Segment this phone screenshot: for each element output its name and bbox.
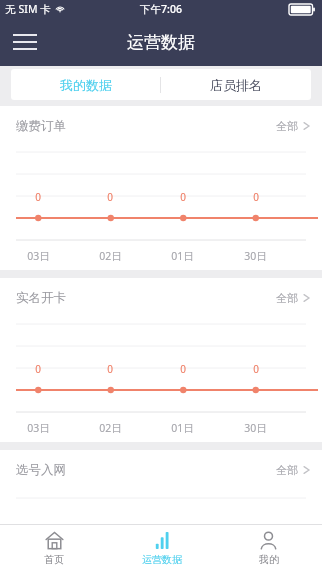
- staticText: 0: [107, 190, 113, 204]
- button[interactable]: 运营数据: [108, 525, 215, 572]
- button[interactable]: Menu: [8, 25, 42, 59]
- staticText: 02日: [99, 421, 122, 435]
- button[interactable]: 店员排名: [161, 69, 311, 100]
- staticText: 01日: [171, 421, 194, 435]
- staticText: 下午7:06: [140, 2, 182, 16]
- staticText: 03日: [27, 421, 50, 435]
- staticText: 缴费订单: [16, 118, 66, 134]
- staticText: 0: [253, 190, 259, 204]
- staticText: 0: [35, 190, 41, 204]
- staticText: 首页: [44, 553, 64, 566]
- staticText: 无 SIM 卡: [5, 2, 51, 16]
- staticText: 02日: [99, 249, 122, 263]
- staticText: 选号入网: [16, 462, 66, 478]
- staticText: 01日: [171, 249, 194, 263]
- staticText: 全部: [276, 291, 298, 305]
- staticText: 运营数据: [142, 553, 182, 566]
- staticText: 我的: [259, 553, 279, 566]
- staticText: 30日: [244, 249, 267, 263]
- staticText: 0: [107, 362, 113, 376]
- button[interactable]: 全部: [276, 106, 322, 146]
- button[interactable]: 全部: [276, 450, 322, 490]
- staticText: 全部: [276, 119, 298, 133]
- staticText: 运营数据: [127, 32, 195, 53]
- button[interactable]: 我的数据: [11, 69, 160, 100]
- staticText: 03日: [27, 249, 50, 263]
- staticText: 0: [253, 362, 259, 376]
- staticText: 我的数据: [60, 77, 112, 93]
- staticText: 30日: [244, 421, 267, 435]
- button[interactable]: 首页: [0, 525, 108, 572]
- staticText: 全部: [276, 463, 298, 477]
- staticText: 实名开卡: [16, 290, 66, 306]
- staticText: 0: [180, 362, 186, 376]
- staticText: 0: [180, 190, 186, 204]
- staticText: 0: [35, 362, 41, 376]
- button[interactable]: 我的: [215, 525, 322, 572]
- staticText: 店员排名: [210, 77, 262, 93]
- button[interactable]: 全部: [276, 278, 322, 318]
